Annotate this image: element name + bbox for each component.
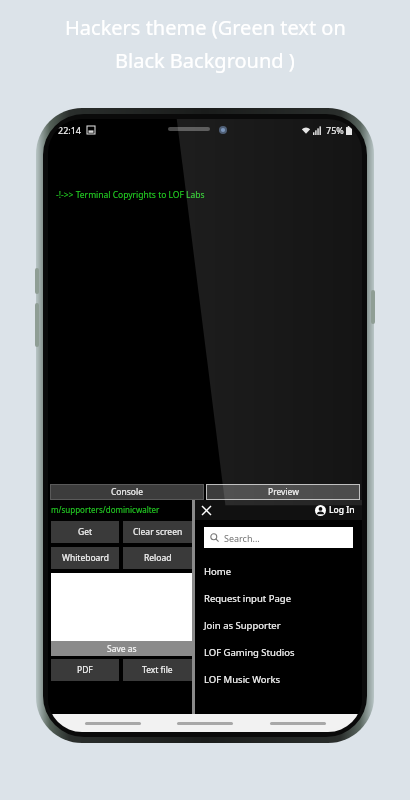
- staticText: Get: [78, 526, 93, 538]
- button[interactable]: LOF Music Works: [195, 666, 362, 693]
- button[interactable]: Close: [199, 503, 213, 517]
- staticText: Save as: [107, 643, 137, 655]
- staticText: Console: [111, 486, 143, 498]
- staticText: Request input Page: [204, 592, 292, 605]
- staticText: LOF Music Works: [204, 673, 281, 686]
- button[interactable]: Clear screen: [123, 521, 192, 543]
- staticText: m/supporters/dominicwalter: [51, 504, 160, 515]
- staticText: LOF Gaming Studios: [204, 646, 295, 659]
- staticText: Join as Supporter: [204, 619, 281, 632]
- staticText: Clear screen: [133, 526, 183, 538]
- staticText: Log In: [329, 504, 355, 516]
- staticText: Home: [204, 565, 232, 578]
- button[interactable]: Search...: [204, 527, 353, 548]
- button[interactable]: Get: [51, 521, 119, 543]
- button[interactable]: Home: [195, 558, 362, 585]
- staticText: Text file: [142, 664, 173, 676]
- button[interactable]: Text file: [123, 659, 192, 681]
- button[interactable]: Preview: [206, 484, 360, 500]
- button[interactable]: Reload: [123, 547, 192, 569]
- staticText: Hackers theme (Green text on: [65, 14, 346, 41]
- staticText: Reload: [144, 552, 172, 564]
- button[interactable]: Console: [50, 484, 204, 500]
- button[interactable]: Whiteboard: [51, 547, 119, 569]
- staticText: -!->> Terminal Copyrights to LOF Labs: [56, 189, 205, 201]
- button[interactable]: Log In: [312, 504, 358, 516]
- button[interactable]: LOF Gaming Studios: [195, 639, 362, 666]
- staticText: Whiteboard: [62, 552, 109, 564]
- button[interactable]: PDF: [51, 659, 119, 681]
- button[interactable]: Request input Page: [195, 585, 362, 612]
- staticText: PDF: [77, 664, 93, 676]
- staticText: Black Background ): [115, 47, 295, 74]
- staticText: 75%: [326, 124, 344, 136]
- staticText: Preview: [268, 486, 299, 498]
- staticText: Search...: [224, 532, 260, 544]
- staticText: 22:14: [58, 124, 82, 136]
- button[interactable]: Join as Supporter: [195, 612, 362, 639]
